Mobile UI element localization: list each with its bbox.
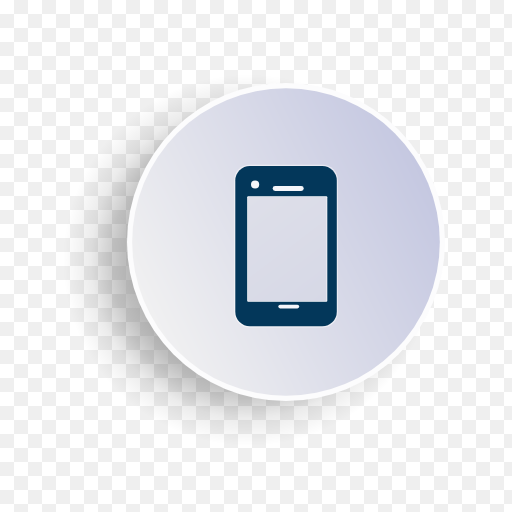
button[interactable]: Mobile phone: [0, 0, 512, 512]
